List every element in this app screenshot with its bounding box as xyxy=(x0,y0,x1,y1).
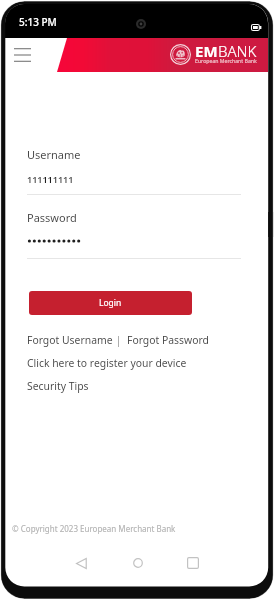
button[interactable]: Home xyxy=(124,550,152,576)
staticText: 111111111 xyxy=(27,173,74,185)
button[interactable]: Menu xyxy=(7,41,37,71)
button[interactable]: Forgot Username xyxy=(27,333,113,347)
staticText: Username xyxy=(27,147,81,162)
staticText: EM xyxy=(195,41,218,61)
button[interactable]: EM Bank xyxy=(170,41,257,68)
button[interactable]: Forgot Password xyxy=(127,333,209,347)
button[interactable]: Back xyxy=(67,550,95,576)
staticText: BANK xyxy=(218,41,257,61)
button[interactable]: Click here to register your device xyxy=(27,356,187,370)
staticText: © Copyright 2023 European Merchant Bank xyxy=(12,523,176,534)
staticText: | xyxy=(113,333,127,347)
button[interactable]: Login xyxy=(29,291,192,315)
button[interactable]: Security Tips xyxy=(27,379,89,393)
button[interactable]: Recents xyxy=(179,550,207,576)
staticText: Login xyxy=(99,297,122,309)
staticText: Password xyxy=(27,210,77,225)
staticText: European Merchant Bank xyxy=(195,57,257,64)
staticText: 5:13 PM xyxy=(19,15,57,29)
